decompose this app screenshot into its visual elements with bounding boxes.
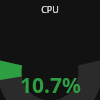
staticText: 10.7% bbox=[20, 71, 81, 100]
staticText: CPU bbox=[41, 3, 59, 15]
button[interactable]: CPU usage 10.7 percent bbox=[0, 0, 100, 100]
